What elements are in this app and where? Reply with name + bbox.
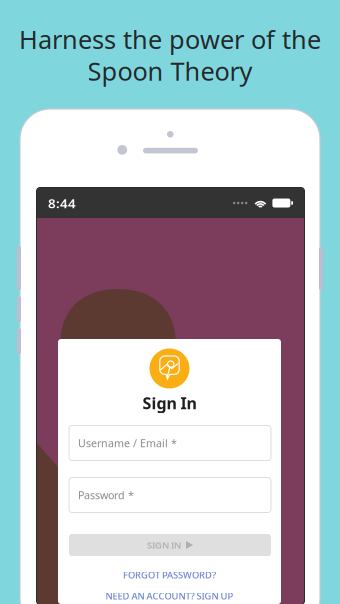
staticText: 8:44 [48,194,76,212]
staticText: Password * [78,488,134,502]
staticText: Harness the power of the [19,22,321,56]
staticText: Spoon Theory [87,54,252,88]
button[interactable]: NEED AN ACCOUNT? SIGN UP [58,590,281,602]
staticText: Sign In [142,392,196,414]
staticText: FORGOT PASSWORD? [123,569,216,581]
staticText: NEED AN ACCOUNT? SIGN UP [105,590,233,602]
staticText: SIGN IN [147,539,181,551]
staticText: Username / Email * [78,436,177,450]
button[interactable]: FORGOT PASSWORD? [58,569,281,581]
button[interactable]: SIGN IN [69,534,271,556]
